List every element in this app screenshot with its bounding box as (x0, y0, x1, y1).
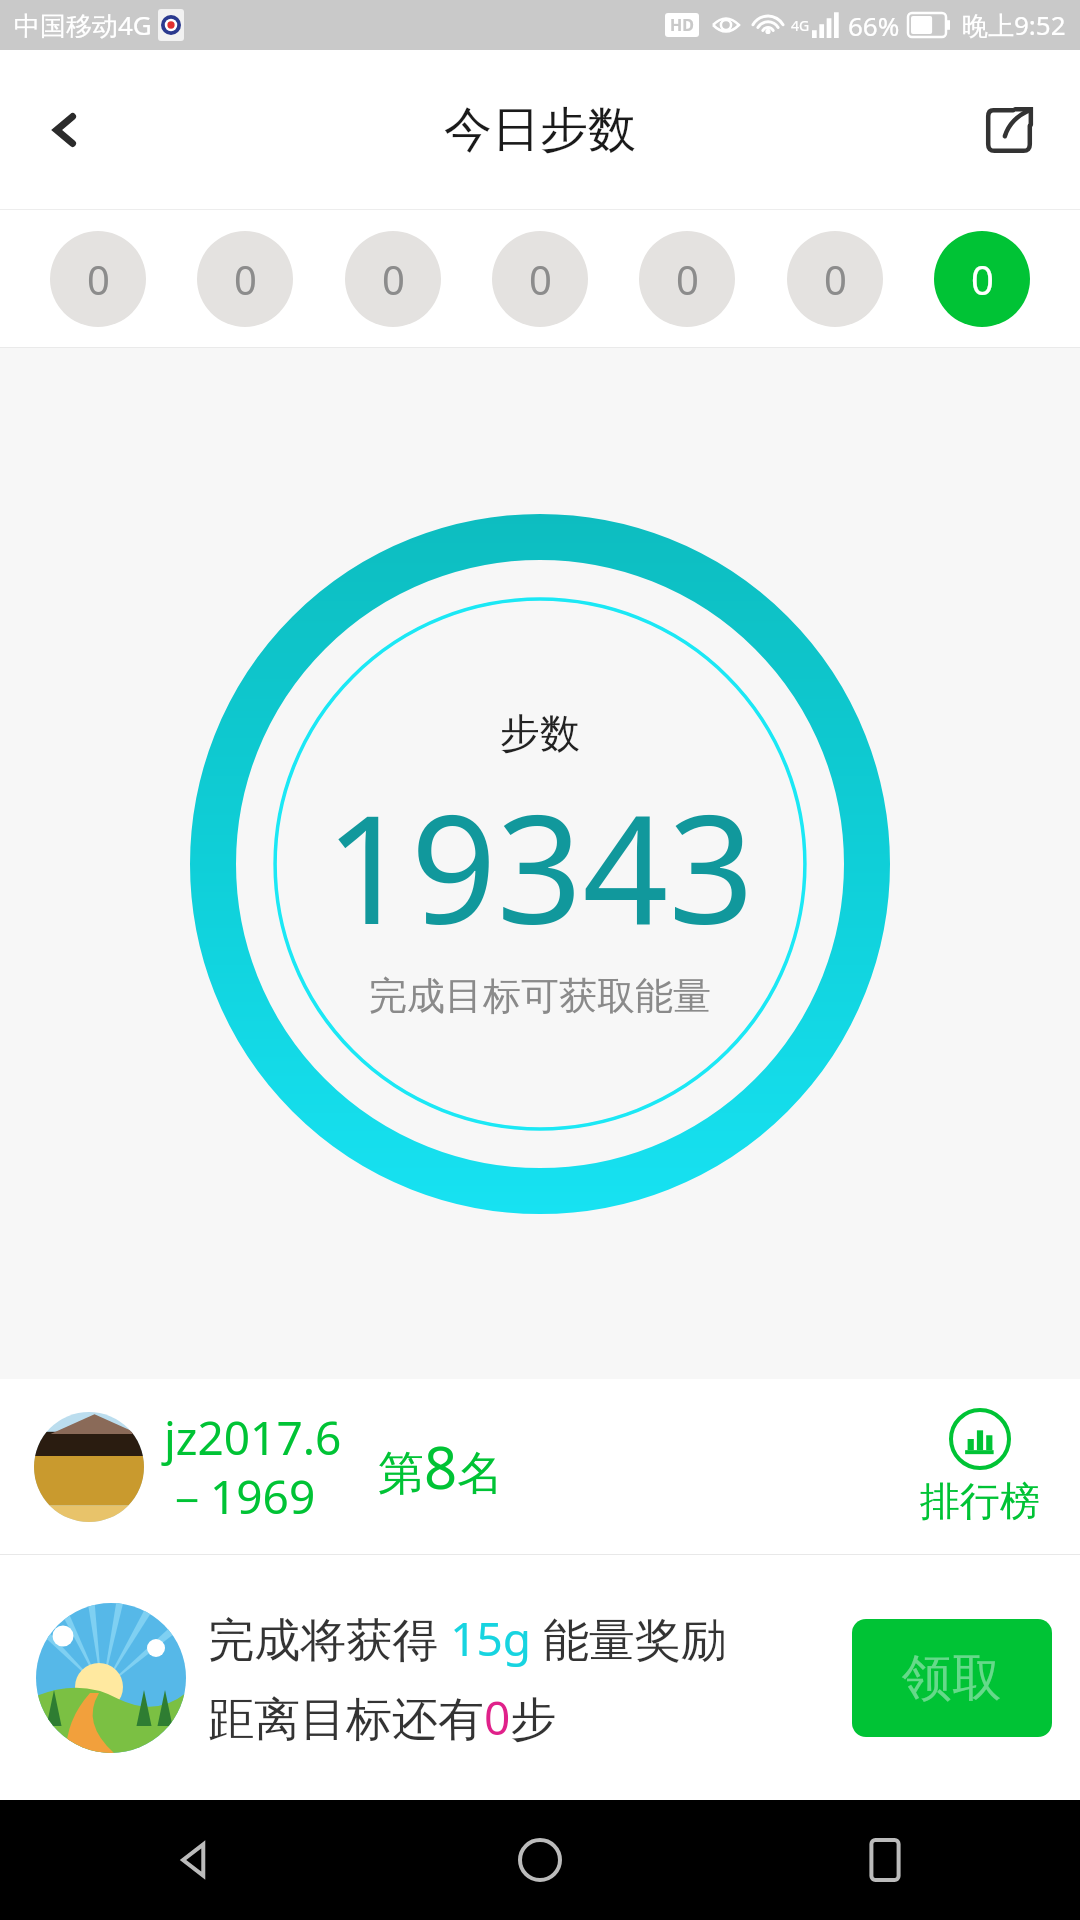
staticText: HD (670, 14, 694, 36)
staticText: 晚上9:52 (962, 7, 1066, 43)
staticText: 0 (971, 252, 994, 306)
button[interactable]: 0 (50, 231, 146, 327)
button[interactable]: Recents (840, 1815, 930, 1905)
button[interactable]: Home (495, 1815, 585, 1905)
button[interactable]: Share (964, 85, 1054, 175)
staticText: 距离目标还有0步 (208, 1686, 557, 1749)
staticText: 0 (234, 252, 257, 306)
button[interactable]: jz2017.6 －1969 (34, 1379, 1046, 1554)
staticText: 4G (791, 16, 810, 35)
staticText: 中国移动4G (14, 7, 152, 43)
button[interactable]: Back (20, 85, 110, 175)
staticText: 今日步数 (444, 100, 636, 160)
button[interactable]: 0 (787, 231, 883, 327)
staticText: 0 (382, 252, 405, 306)
staticText: 步数 (500, 708, 580, 758)
staticText: 领取 (902, 1647, 1002, 1710)
button[interactable]: 领取 (852, 1619, 1052, 1737)
staticText: 第8名 (378, 1427, 504, 1506)
button[interactable]: Back (150, 1815, 240, 1905)
button[interactable]: 0 (934, 231, 1030, 327)
button[interactable]: 0 (197, 231, 293, 327)
button[interactable]: 0 (639, 231, 735, 327)
staticText: 完成将获得 15g 能量奖励 (208, 1607, 727, 1670)
button[interactable]: 排行榜 (914, 1408, 1046, 1526)
staticText: 0 (824, 252, 847, 306)
button[interactable]: 0 (345, 231, 441, 327)
staticText: 0 (529, 252, 552, 306)
staticText: jz2017.6 －1969 (164, 1406, 342, 1527)
staticText: 66% (848, 8, 900, 43)
staticText: 排行榜 (920, 1476, 1040, 1526)
button[interactable]: 0 (492, 231, 588, 327)
staticText: 完成目标可获取能量 (369, 972, 711, 1020)
staticText: 19343 (325, 764, 755, 968)
staticText: 0 (87, 252, 110, 306)
staticText: 0 (676, 252, 699, 306)
